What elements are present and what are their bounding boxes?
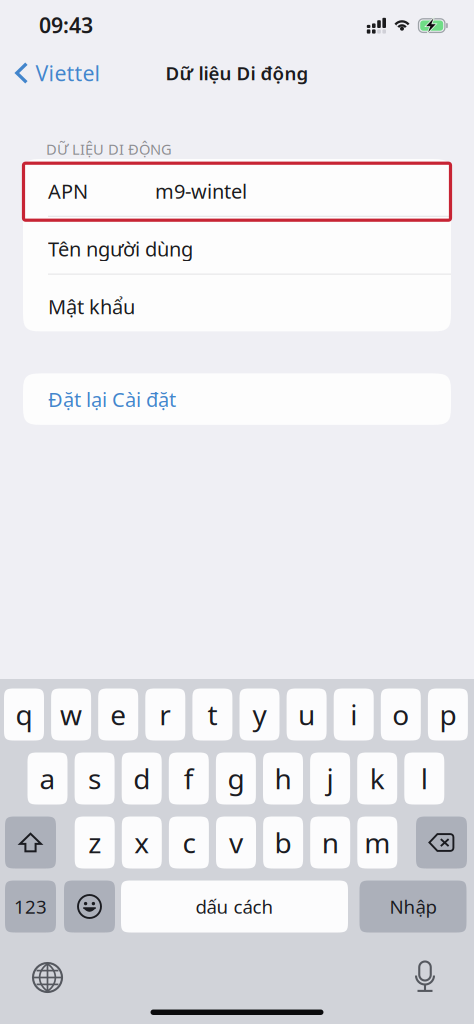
staticText: Mật khẩu: [48, 293, 135, 320]
button[interactable]: Đặt lại Cài đặt: [23, 373, 451, 425]
staticText: y: [252, 696, 266, 733]
staticText: h: [274, 760, 291, 797]
staticText: u: [298, 696, 315, 733]
button[interactable]: n: [310, 816, 350, 868]
staticText: Nhập: [389, 894, 436, 919]
button[interactable]: g: [216, 752, 256, 804]
button[interactable]: o: [381, 688, 421, 740]
staticText: g: [227, 760, 244, 797]
button[interactable]: h: [263, 752, 303, 804]
button[interactable]: 123: [5, 880, 56, 932]
staticText: Đặt lại Cài đặt: [48, 386, 176, 412]
button[interactable]: x: [122, 816, 162, 868]
button[interactable]: i: [334, 688, 374, 740]
button[interactable]: l: [404, 752, 444, 804]
staticText: b: [275, 824, 292, 861]
staticText: Tên người dùng: [48, 235, 193, 262]
button[interactable]: Delete: [416, 816, 467, 868]
staticText: n: [322, 824, 339, 861]
staticText: v: [229, 824, 243, 861]
button[interactable]: t: [192, 688, 232, 740]
staticText: z: [88, 824, 101, 861]
button[interactable]: v: [216, 816, 256, 868]
button[interactable]: p: [428, 688, 468, 740]
button[interactable]: c: [169, 816, 209, 868]
staticText: x: [134, 824, 149, 861]
staticText: dấu cách: [195, 894, 273, 919]
staticText: 123: [14, 894, 47, 919]
button[interactable]: s: [75, 752, 115, 804]
button[interactable]: w: [51, 688, 91, 740]
staticText: j: [327, 760, 334, 797]
button[interactable]: m: [357, 816, 397, 868]
button[interactable]: Mật khẩu: [23, 275, 451, 331]
staticText: k: [370, 760, 385, 797]
button[interactable]: Shift: [5, 816, 56, 868]
button[interactable]: z: [75, 816, 115, 868]
staticText: p: [439, 696, 456, 733]
button[interactable]: Emoji: [64, 880, 115, 932]
staticText: m: [364, 824, 390, 861]
button[interactable]: u: [287, 688, 327, 740]
button[interactable]: Viettel: [0, 50, 112, 96]
button[interactable]: a: [27, 752, 67, 804]
button[interactable]: APN: [23, 159, 451, 216]
staticText: q: [15, 696, 32, 733]
staticText: Viettel: [35, 59, 100, 87]
button[interactable]: r: [145, 688, 185, 740]
staticText: d: [133, 760, 150, 797]
staticText: s: [88, 760, 101, 797]
staticText: i: [350, 696, 357, 733]
button[interactable]: dấu cách: [121, 880, 348, 932]
staticText: 09:43: [39, 11, 93, 39]
staticText: a: [39, 760, 55, 797]
button[interactable]: q: [4, 688, 44, 740]
button[interactable]: k: [357, 752, 397, 804]
staticText: Dữ liệu Di động: [165, 61, 308, 85]
button[interactable]: Nhập: [359, 880, 466, 932]
staticText: c: [182, 824, 195, 861]
staticText: l: [421, 760, 428, 797]
staticText: DỮ LIỆU DI ĐỘNG: [46, 139, 172, 159]
staticText: f: [184, 760, 194, 797]
staticText: APN: [48, 178, 88, 204]
button[interactable]: y: [239, 688, 279, 740]
button[interactable]: f: [169, 752, 209, 804]
staticText: m9-wintel: [155, 178, 247, 204]
button[interactable]: e: [98, 688, 138, 740]
staticText: r: [159, 696, 171, 733]
staticText: t: [207, 696, 217, 733]
staticText: e: [110, 696, 126, 733]
button[interactable]: Next keyboard: [33, 963, 62, 992]
staticText: o: [392, 696, 409, 733]
button[interactable]: Dictation: [413, 961, 437, 993]
staticText: w: [60, 696, 82, 733]
button[interactable]: b: [263, 816, 303, 868]
button[interactable]: d: [122, 752, 162, 804]
button[interactable]: j: [310, 752, 350, 804]
button[interactable]: Tên người dùng: [23, 217, 451, 274]
